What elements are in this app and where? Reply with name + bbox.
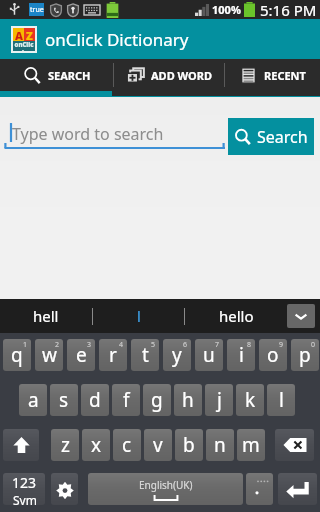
- staticText: onClick: [13, 41, 35, 51]
- staticText: b: [183, 432, 195, 458]
- staticText: e: [76, 342, 87, 368]
- button[interactable]: d: [81, 384, 109, 416]
- staticText: 8: [247, 340, 252, 350]
- staticText: x: [91, 432, 102, 458]
- button[interactable]: Expand suggestions: [287, 304, 315, 328]
- button[interactable]: a: [19, 384, 47, 416]
- staticText: o: [267, 342, 279, 368]
- button[interactable]: Enter: [278, 473, 317, 505]
- button[interactable]: Backspace: [275, 429, 314, 461]
- staticText: Type word to search: [12, 123, 164, 145]
- staticText: l: [279, 387, 284, 413]
- staticText: f: [123, 387, 130, 413]
- button[interactable]: e: [67, 339, 95, 371]
- staticText: 4: [119, 340, 124, 350]
- button[interactable]: Punctuation: [246, 473, 273, 505]
- staticText: p: [299, 342, 311, 368]
- button[interactable]: b: [175, 429, 203, 461]
- staticText: English(UK): [139, 478, 193, 492]
- staticText: r: [109, 342, 117, 368]
- staticText: l: [137, 306, 141, 326]
- button[interactable]: y: [163, 339, 191, 371]
- button[interactable]: j: [205, 384, 233, 416]
- staticText: 6: [183, 340, 188, 350]
- staticText: c: [122, 432, 132, 458]
- button[interactable]: p: [291, 339, 319, 371]
- staticText: i: [239, 342, 244, 368]
- button[interactable]: SEARCH: [0, 59, 113, 91]
- staticText: t: [142, 342, 149, 368]
- staticText: v: [153, 432, 163, 458]
- staticText: 100%: [212, 2, 241, 17]
- staticText: 9: [279, 340, 284, 350]
- staticText: Search: [257, 126, 308, 148]
- staticText: j: [217, 387, 222, 413]
- staticText: 3: [87, 340, 92, 350]
- button[interactable]: hello: [185, 299, 287, 333]
- staticText: g: [151, 387, 163, 413]
- button[interactable]: ADD WORD: [114, 59, 224, 91]
- staticText: hello: [219, 306, 254, 326]
- button[interactable]: s: [50, 384, 78, 416]
- staticText: 5:16 PM: [260, 0, 317, 19]
- staticText: h: [182, 387, 194, 413]
- staticText: n: [214, 432, 226, 458]
- button[interactable]: Shift: [3, 429, 39, 461]
- staticText: RECENT: [264, 68, 306, 83]
- staticText: m: [242, 432, 260, 458]
- staticText: u: [203, 342, 215, 368]
- staticText: q: [11, 342, 23, 368]
- button[interactable]: i: [227, 339, 255, 371]
- button[interactable]: Search: [228, 118, 314, 155]
- staticText: true: [30, 5, 44, 15]
- button[interactable]: Space: [88, 473, 243, 505]
- button[interactable]: u: [195, 339, 223, 371]
- button[interactable]: 123: [3, 473, 45, 505]
- button[interactable]: l: [93, 299, 184, 333]
- button[interactable]: v: [144, 429, 172, 461]
- button[interactable]: RECENT: [225, 59, 320, 91]
- button[interactable]: Type word to search: [4, 122, 225, 150]
- staticText: s: [59, 387, 69, 413]
- button[interactable]: m: [237, 429, 265, 461]
- button[interactable]: x: [82, 429, 110, 461]
- button[interactable]: o: [259, 339, 287, 371]
- button[interactable]: hell: [0, 299, 92, 333]
- staticText: Sym: [13, 492, 37, 505]
- staticText: 1: [23, 340, 28, 350]
- button[interactable]: z: [51, 429, 79, 461]
- staticText: 0: [311, 340, 316, 350]
- staticText: 2: [55, 340, 60, 350]
- staticText: A: [15, 28, 23, 41]
- staticText: onClick Dictionary: [45, 28, 189, 51]
- button[interactable]: w: [35, 339, 63, 371]
- staticText: 7: [215, 340, 220, 350]
- button[interactable]: t: [131, 339, 159, 371]
- button[interactable]: g: [143, 384, 171, 416]
- button[interactable]: c: [113, 429, 141, 461]
- button[interactable]: q: [3, 339, 31, 371]
- staticText: 5: [151, 340, 156, 350]
- button[interactable]: r: [99, 339, 127, 371]
- staticText: z: [61, 432, 70, 458]
- staticText: y: [172, 342, 182, 368]
- staticText: Z: [26, 28, 33, 41]
- staticText: 123: [12, 473, 37, 492]
- button[interactable]: Settings: [51, 473, 78, 505]
- staticText: d: [89, 387, 101, 413]
- staticText: a: [28, 387, 39, 413]
- staticText: ADD WORD: [151, 68, 213, 83]
- button[interactable]: f: [112, 384, 140, 416]
- staticText: k: [245, 387, 256, 413]
- staticText: w: [42, 342, 57, 368]
- button[interactable]: h: [174, 384, 202, 416]
- button[interactable]: k: [236, 384, 264, 416]
- staticText: hell: [33, 306, 59, 326]
- staticText: SEARCH: [48, 68, 91, 83]
- button[interactable]: n: [206, 429, 234, 461]
- button[interactable]: l: [267, 384, 295, 416]
